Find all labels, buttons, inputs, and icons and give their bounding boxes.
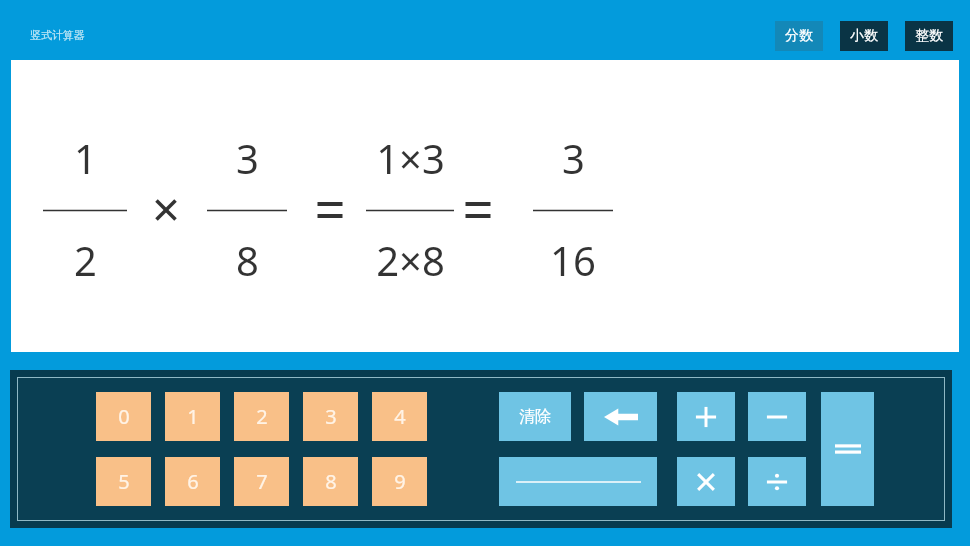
staticText: 竖式计算器 [30, 28, 85, 42]
button[interactable]: Backspace [584, 392, 657, 441]
staticText: 4 [394, 403, 406, 430]
staticText: 3 [562, 131, 585, 185]
button[interactable]: 分数 [775, 21, 823, 51]
staticText: 16 [550, 233, 596, 287]
button[interactable]: 8 [303, 457, 358, 506]
staticText: 清除 [519, 407, 551, 427]
staticText: 5 [118, 468, 130, 495]
staticText: 1 [187, 403, 199, 430]
button[interactable]: Minus [748, 392, 806, 441]
staticText: 6 [187, 468, 199, 495]
staticText: 1×3 [376, 131, 445, 185]
button[interactable]: Multiply [677, 457, 735, 506]
staticText: 7 [256, 468, 268, 495]
staticText: 小数 [850, 27, 878, 45]
button[interactable]: 6 [165, 457, 220, 506]
staticText: 2 [256, 403, 268, 430]
button[interactable]: 1 [165, 392, 220, 441]
staticText: 2×8 [376, 233, 445, 287]
button[interactable]: 0 [96, 392, 151, 441]
staticText: 整数 [915, 27, 943, 45]
button[interactable]: Fraction bar [499, 457, 657, 506]
staticText: 9 [394, 468, 406, 495]
button[interactable]: 7 [234, 457, 289, 506]
button[interactable]: 小数 [840, 21, 888, 51]
button[interactable]: 3 [303, 392, 358, 441]
button[interactable]: 4 [372, 392, 427, 441]
staticText: 3 [236, 131, 259, 185]
button[interactable]: Plus [677, 392, 735, 441]
staticText: 3 [325, 403, 337, 430]
button[interactable]: 整数 [905, 21, 953, 51]
button[interactable]: 2 [234, 392, 289, 441]
staticText: 0 [118, 403, 130, 430]
button[interactable]: 清除 [499, 392, 571, 441]
staticText: 8 [236, 233, 259, 287]
button[interactable]: Equals [821, 392, 874, 506]
button[interactable]: 9 [372, 457, 427, 506]
staticText: 2 [74, 233, 97, 287]
staticText: 分数 [785, 27, 813, 45]
staticText: 1 [74, 131, 97, 185]
button[interactable]: Divide [748, 457, 806, 506]
staticText: 8 [325, 468, 337, 495]
button[interactable]: 5 [96, 457, 151, 506]
